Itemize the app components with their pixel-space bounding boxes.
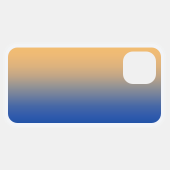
button[interactable]: iPhone case, orange to blue gradient: [8, 47, 161, 123]
